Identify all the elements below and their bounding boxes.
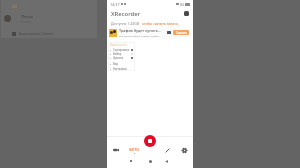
button[interactable]: Сортировать bbox=[110, 48, 133, 52]
button[interactable]: Back bbox=[165, 160, 168, 163]
staticText: Настройки bbox=[113, 67, 127, 71]
staticText: Доступно 1.43GB bbox=[111, 21, 139, 26]
staticText: 14:37 bbox=[110, 2, 120, 7]
staticText: Удалить bbox=[113, 56, 124, 60]
staticText: Видеозаписи Ремонт bbox=[19, 31, 54, 36]
staticText: Трафик будет купить... bbox=[119, 28, 162, 33]
button[interactable]: Record bbox=[144, 135, 156, 147]
staticText: Видеозаписи bbox=[110, 43, 127, 47]
staticText: Сортировать bbox=[113, 48, 130, 52]
staticText: Вид bbox=[113, 62, 118, 66]
staticText: 84 bbox=[180, 2, 184, 7]
staticText: чтобы сделать запись, долго нажмите кноп… bbox=[142, 21, 189, 26]
button[interactable]: Home bbox=[149, 160, 152, 163]
button[interactable]: Video bbox=[107, 144, 125, 156]
button[interactable]: Удалить bbox=[110, 56, 133, 60]
button[interactable]: Edit bbox=[159, 144, 176, 156]
staticText: XRecorder bbox=[111, 10, 141, 18]
staticText: ФОТО bbox=[129, 147, 139, 152]
staticText: Выбор bbox=[113, 52, 122, 56]
button[interactable]: Выбор bbox=[110, 52, 133, 56]
staticText: Скачать bbox=[176, 31, 187, 35]
staticText: аккаунт bbox=[21, 20, 32, 23]
button[interactable]: ФОТО bbox=[125, 144, 142, 156]
button[interactable]: Скачать bbox=[173, 30, 189, 35]
button[interactable]: Вид bbox=[110, 62, 133, 66]
button[interactable]: Трафик будет купить... bbox=[109, 27, 191, 38]
staticText: Все просто работа Трафик Трафик... bbox=[119, 34, 161, 37]
staticText: Леша bbox=[21, 14, 33, 20]
button[interactable]: Account bbox=[184, 11, 189, 16]
button[interactable]: Settings bbox=[176, 144, 193, 156]
button[interactable]: Настройки bbox=[110, 67, 133, 71]
